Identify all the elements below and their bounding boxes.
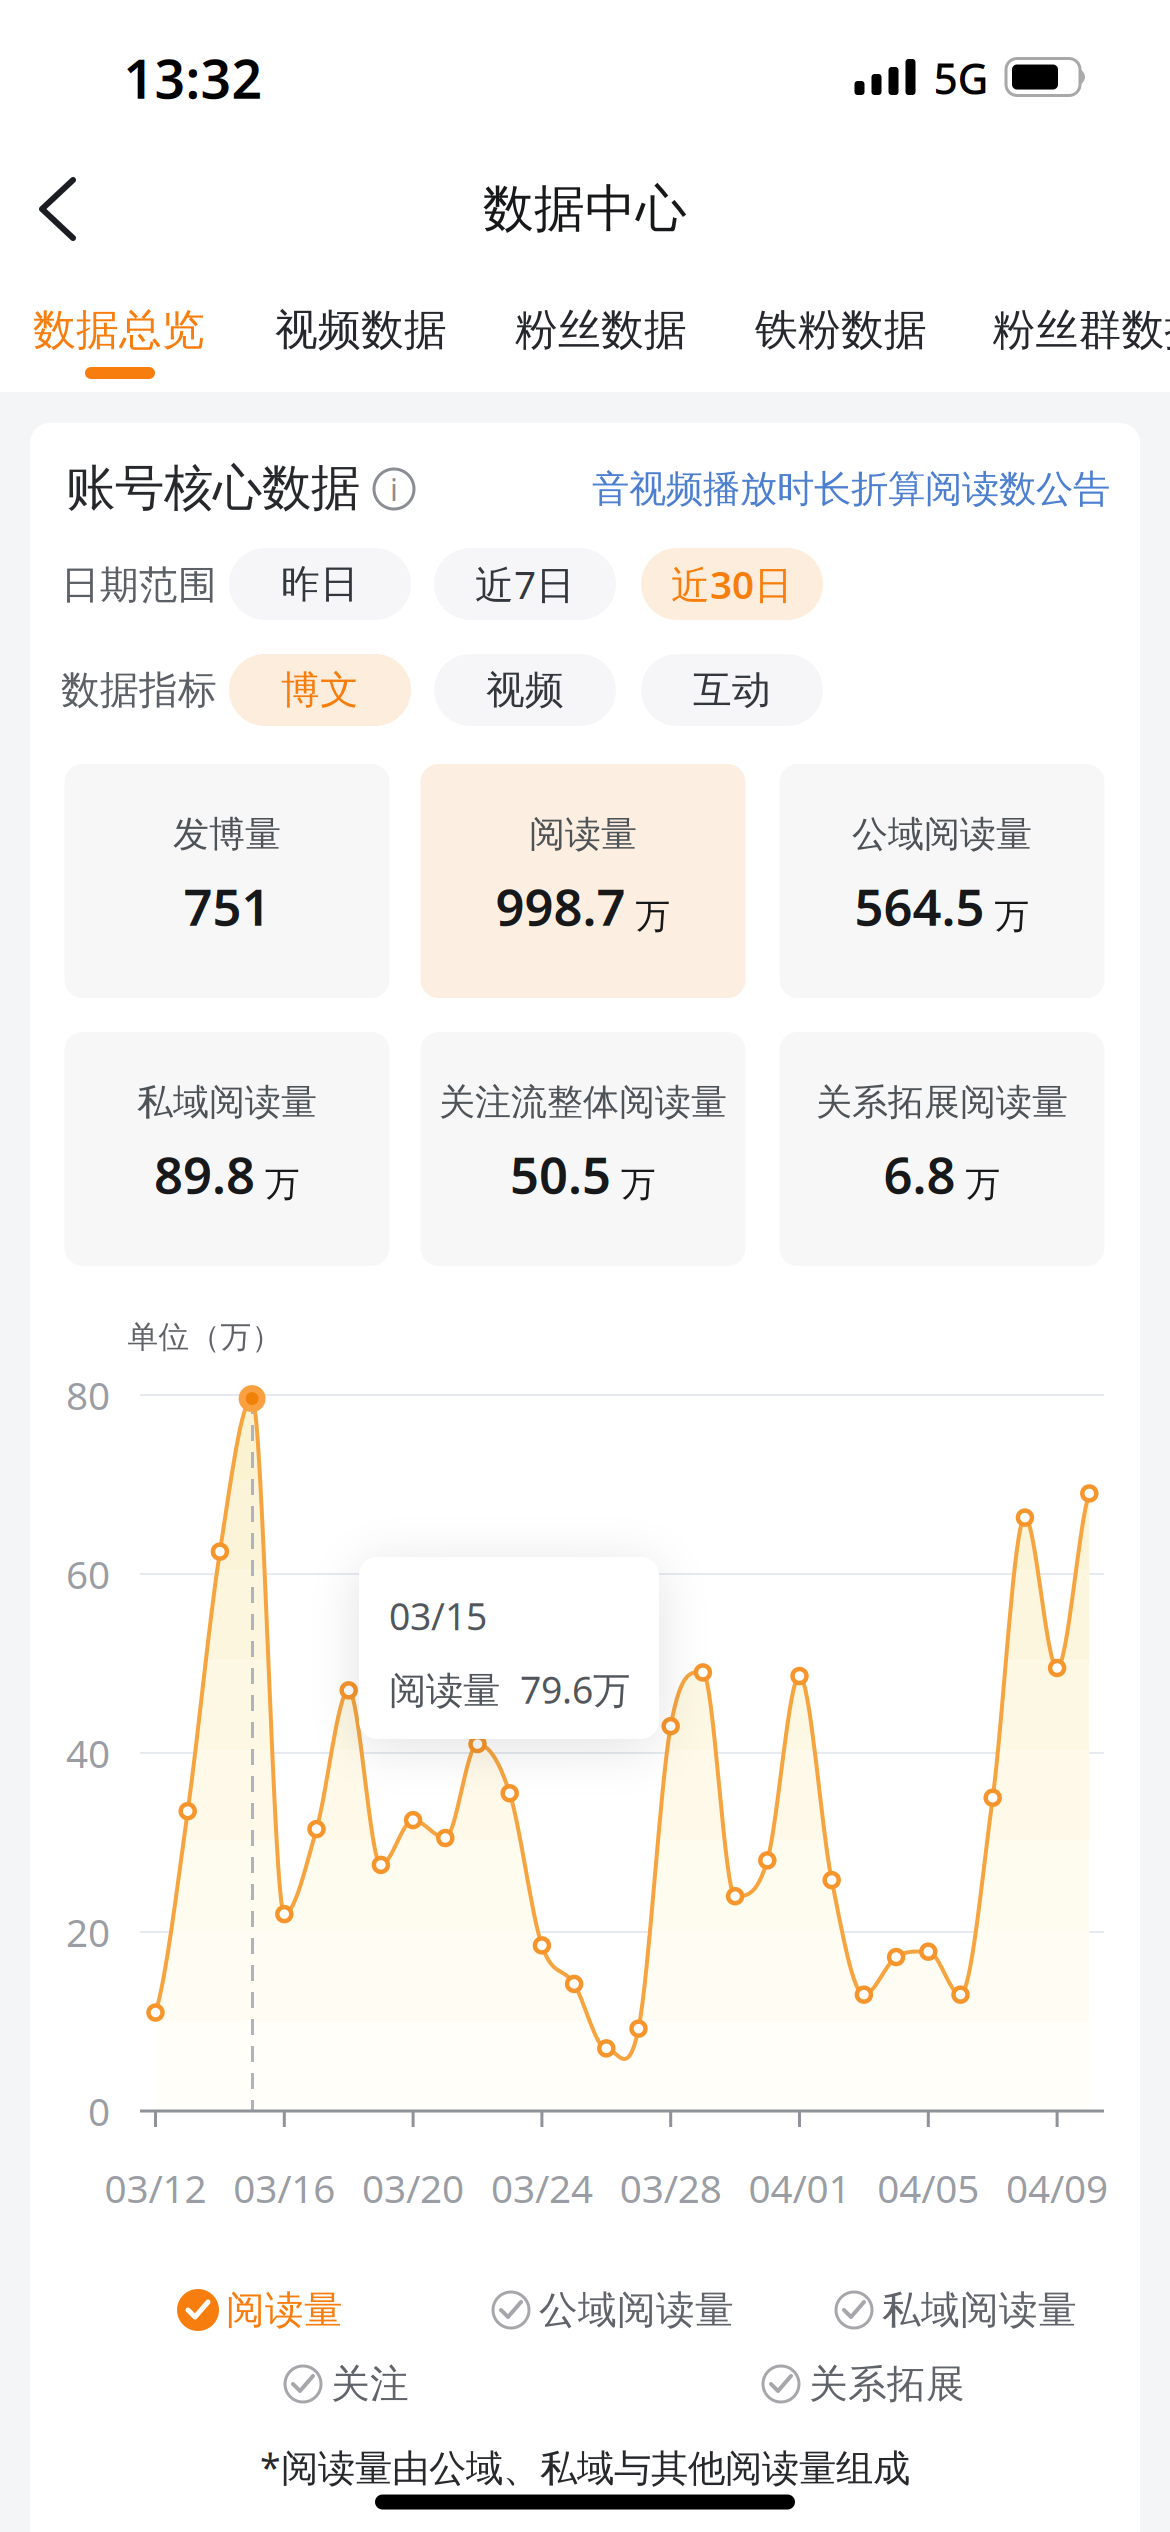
- staticText: 03/12: [104, 2162, 206, 2214]
- staticText: 粉丝群数据: [992, 304, 1170, 356]
- button[interactable]: 视频数据: [246, 285, 476, 375]
- staticText: 998.7 万: [495, 872, 670, 940]
- staticText: 564.5 万: [854, 872, 1029, 940]
- staticText: 03/20: [362, 2162, 464, 2214]
- staticText: 关系拓展: [809, 2360, 965, 2408]
- button[interactable]: Back: [20, 160, 96, 258]
- button[interactable]: 粉丝群数据: [985, 285, 1170, 375]
- staticText: 03/24: [491, 2162, 593, 2214]
- staticText: 昨日: [281, 560, 359, 608]
- staticText: 80: [66, 1369, 110, 1421]
- button[interactable]: 数据总览: [4, 285, 234, 375]
- staticText: 阅读量 79.6万: [389, 1665, 630, 1714]
- staticText: 04/05: [877, 2162, 979, 2214]
- staticText: i: [390, 469, 398, 509]
- button[interactable]: Info: [372, 467, 416, 511]
- staticText: *阅读量由公域、私域与其他阅读量组成: [260, 2442, 910, 2492]
- button[interactable]: 铁粉数据: [726, 285, 956, 375]
- staticText: 40: [66, 1727, 110, 1779]
- staticText: 日期范围: [61, 561, 217, 609]
- staticText: 50.5 万: [510, 1140, 656, 1208]
- button[interactable]: 关系拓展: [759, 2360, 965, 2408]
- button[interactable]: 粉丝数据: [486, 285, 716, 375]
- staticText: 单位（万）: [127, 1318, 282, 1356]
- staticText: 关注流整体阅读量: [439, 1080, 727, 1124]
- staticText: 博文: [281, 666, 359, 714]
- staticText: 音视频播放时长折算阅读数公告: [592, 466, 1110, 512]
- button[interactable]: 关系拓展阅读量: [779, 1032, 1104, 1266]
- staticText: 关系拓展阅读量: [816, 1080, 1068, 1124]
- button[interactable]: 近7日: [434, 548, 616, 620]
- staticText: 60: [66, 1548, 110, 1600]
- staticText: 近30日: [671, 558, 793, 610]
- staticText: 751: [183, 872, 270, 940]
- staticText: 阅读量: [226, 2286, 343, 2334]
- button[interactable]: 博文: [229, 654, 411, 726]
- button[interactable]: 视频: [434, 654, 616, 726]
- button[interactable]: 私域阅读量: [832, 2286, 1077, 2334]
- staticText: 账号核心数据: [66, 458, 360, 518]
- button[interactable]: 公域阅读量: [489, 2286, 734, 2334]
- staticText: 铁粉数据: [755, 304, 927, 356]
- button[interactable]: 互动: [641, 654, 823, 726]
- staticText: 03/16: [233, 2162, 335, 2214]
- staticText: 13:32: [123, 43, 262, 113]
- staticText: 数据指标: [61, 666, 217, 714]
- staticText: 公域阅读量: [852, 812, 1032, 856]
- button[interactable]: 关注流整体阅读量: [420, 1032, 745, 1266]
- staticText: 20: [66, 1906, 110, 1958]
- staticText: 视频数据: [275, 304, 447, 356]
- staticText: 阅读量: [529, 812, 637, 856]
- staticText: 89.8 万: [154, 1140, 300, 1208]
- staticText: 5G: [933, 50, 988, 106]
- staticText: 视频: [486, 666, 564, 714]
- staticText: 03/28: [620, 2162, 722, 2214]
- button[interactable]: 昨日: [229, 548, 411, 620]
- staticText: 公域阅读量: [539, 2286, 734, 2334]
- staticText: 6.8 万: [883, 1140, 1000, 1208]
- staticText: 关注: [331, 2360, 409, 2408]
- staticText: 发博量: [173, 812, 281, 856]
- staticText: 数据中心: [483, 178, 687, 240]
- staticText: 03/15: [389, 1591, 487, 1641]
- staticText: 近7日: [475, 558, 575, 610]
- button[interactable]: 音视频播放时长折算阅读数公告: [592, 466, 1110, 512]
- staticText: 04/09: [1006, 2162, 1108, 2214]
- button[interactable]: 阅读量: [420, 764, 745, 998]
- staticText: 私域阅读量: [882, 2286, 1077, 2334]
- staticText: 私域阅读量: [137, 1080, 317, 1124]
- button[interactable]: 关注: [281, 2360, 409, 2408]
- button[interactable]: 近30日: [641, 548, 823, 620]
- button[interactable]: 发博量: [64, 764, 389, 998]
- staticText: 数据总览: [33, 304, 205, 356]
- button[interactable]: 私域阅读量: [64, 1032, 389, 1266]
- button[interactable]: 阅读量: [176, 2286, 343, 2334]
- staticText: 0: [88, 2085, 110, 2137]
- staticText: 粉丝数据: [515, 304, 687, 356]
- staticText: 04/01: [748, 2162, 850, 2214]
- staticText: 互动: [693, 666, 771, 714]
- button[interactable]: 公域阅读量: [779, 764, 1104, 998]
